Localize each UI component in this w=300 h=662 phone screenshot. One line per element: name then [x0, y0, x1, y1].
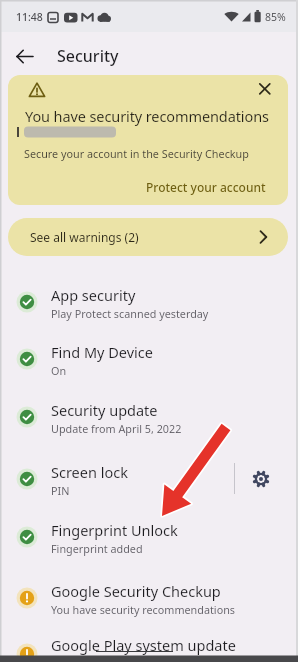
- staticText: Find My Device: [51, 342, 153, 362]
- button[interactable]: [0, 273, 296, 331]
- button[interactable]: [247, 465, 275, 493]
- button[interactable]: [0, 388, 296, 446]
- button[interactable]: [0, 330, 296, 388]
- staticText: Security: [57, 45, 119, 67]
- staticText: Fingerprint Unlock: [51, 520, 178, 540]
- button[interactable]: [255, 79, 275, 99]
- staticText: See all warnings (2): [30, 229, 139, 245]
- staticText: Screen lock: [51, 462, 128, 482]
- staticText: Update from April 5, 2022: [51, 421, 182, 436]
- staticText: Secure your account in the Security Chec…: [24, 146, 249, 161]
- staticText: PIN: [51, 483, 70, 498]
- staticText: Security update: [51, 400, 158, 420]
- button[interactable]: [0, 450, 296, 508]
- button[interactable]: [0, 508, 296, 566]
- staticText: 85%: [265, 10, 286, 24]
- staticText: You have security recommendations: [25, 106, 269, 126]
- staticText: Google Play system update: [51, 635, 236, 655]
- staticText: 11:48: [16, 10, 43, 24]
- button[interactable]: [0, 569, 296, 627]
- button[interactable]: [0, 625, 296, 662]
- button[interactable]: [8, 44, 42, 70]
- staticText: You have security recommendations: [51, 602, 236, 617]
- staticText: Google Security Checkup: [51, 581, 221, 601]
- button[interactable]: Protect your account: [0, 175, 266, 199]
- staticText: Fingerprint added: [51, 541, 143, 556]
- staticText: Play Protect scanned yesterday: [51, 306, 209, 321]
- staticText: On: [51, 363, 67, 378]
- staticText: Protect your account: [146, 179, 266, 195]
- staticText: App security: [51, 285, 136, 305]
- button[interactable]: See all warnings (2): [8, 218, 288, 256]
